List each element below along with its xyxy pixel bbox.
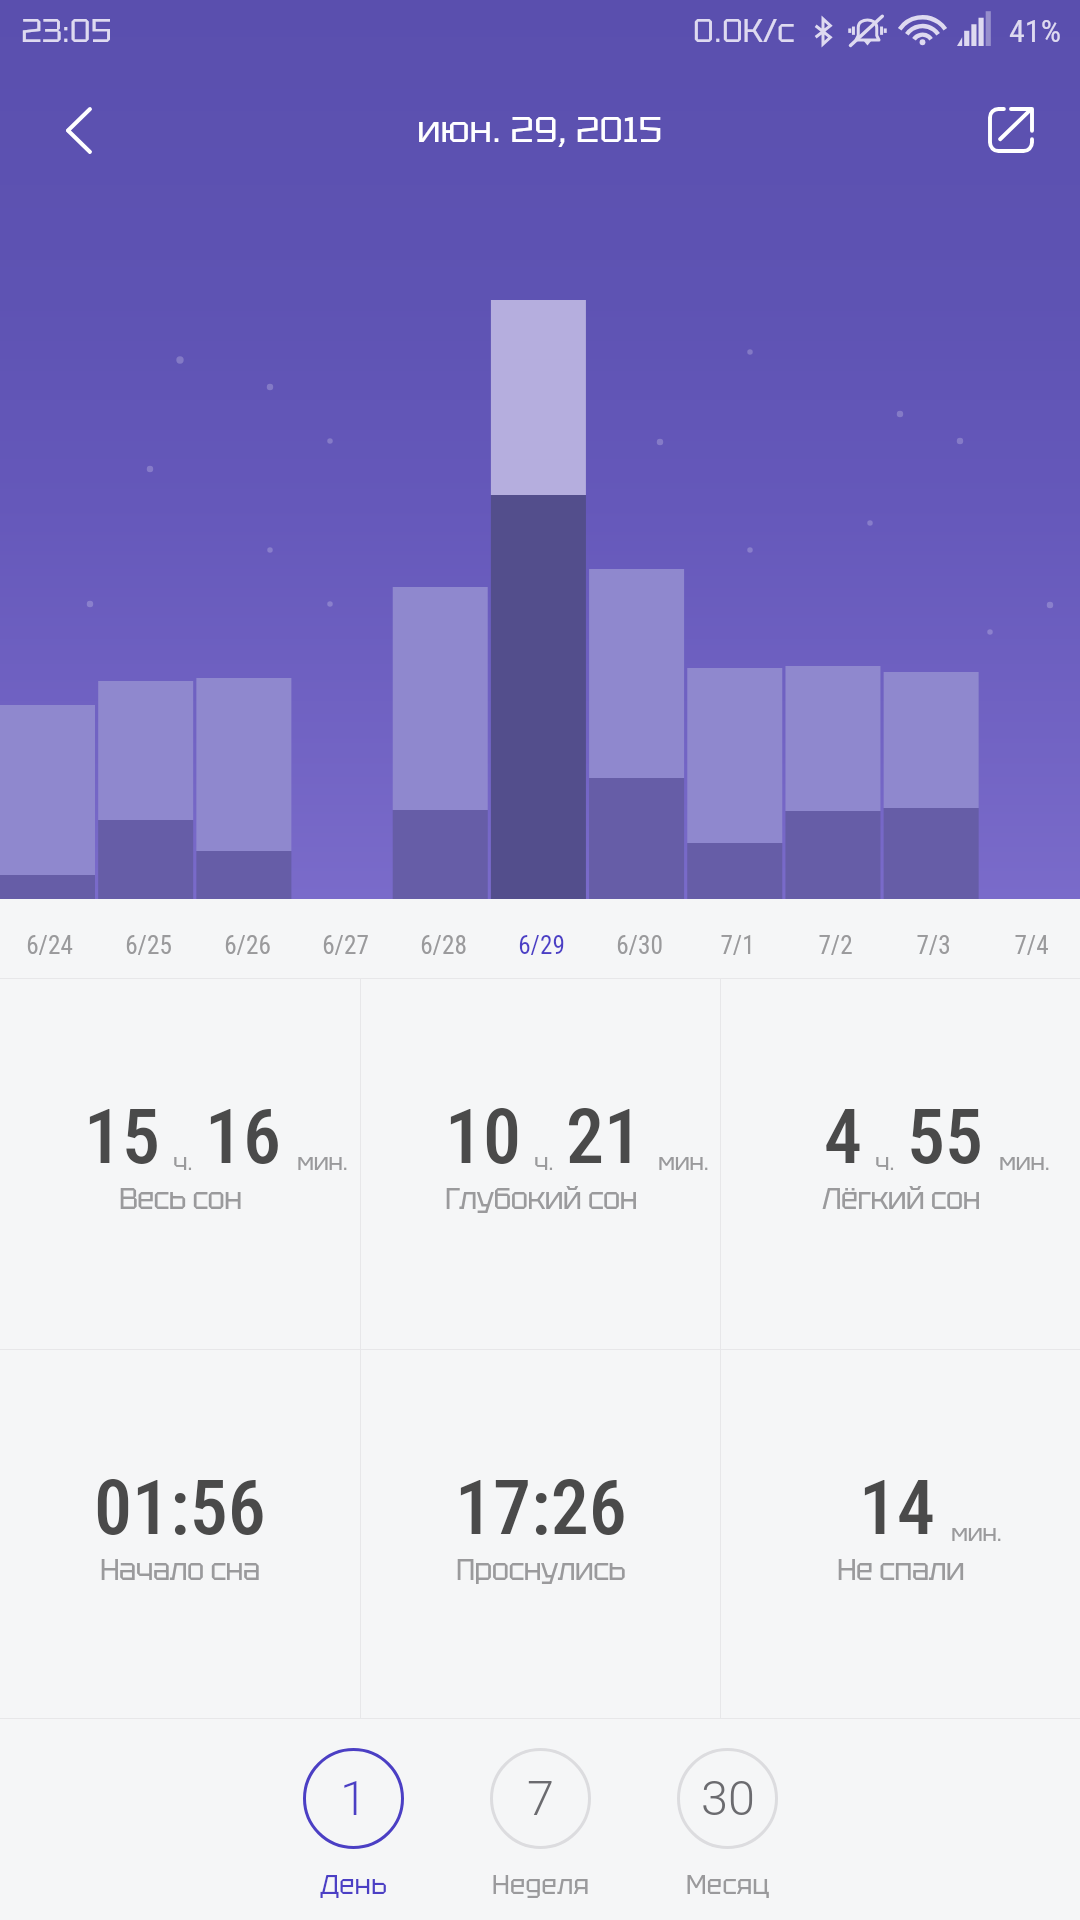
staticText: 21: [566, 1093, 643, 1182]
staticText: 1: [340, 1770, 367, 1827]
staticText: 17:26: [455, 1464, 627, 1553]
staticText: 0.0K/c: [693, 10, 795, 52]
staticText: Весь сон: [119, 1180, 242, 1218]
button[interactable]: 6/30: [590, 899, 688, 978]
staticText: 15: [84, 1093, 161, 1182]
staticText: Месяц: [686, 1868, 770, 1902]
button[interactable]: 4: [721, 979, 1080, 1349]
staticText: мин.: [999, 1146, 1050, 1177]
button[interactable]: 14: [721, 1350, 1080, 1718]
button[interactable]: 15: [0, 979, 360, 1349]
staticText: 30: [701, 1770, 755, 1827]
button[interactable]: 6/28: [394, 899, 492, 978]
button[interactable]: Share: [951, 70, 1071, 190]
staticText: 6/24: [26, 931, 73, 961]
button[interactable]: 7/1: [688, 899, 786, 978]
staticText: 7: [527, 1770, 554, 1827]
staticText: Не спали: [837, 1551, 964, 1589]
button[interactable]: 30: [634, 1719, 821, 1902]
staticText: 7/3: [916, 931, 951, 961]
button[interactable]: 6/24: [0, 899, 99, 978]
staticText: 6/29: [518, 931, 565, 961]
staticText: 6/30: [616, 931, 663, 961]
button[interactable]: 7/2: [786, 899, 884, 978]
staticText: 6/28: [420, 931, 467, 961]
staticText: ч.: [534, 1146, 554, 1177]
staticText: День: [320, 1868, 388, 1902]
staticText: Неделя: [492, 1868, 590, 1902]
staticText: 7/2: [818, 931, 853, 961]
staticText: июн. 29, 2015: [417, 106, 663, 153]
staticText: мин.: [951, 1517, 1002, 1548]
staticText: Лёгкий сон: [822, 1180, 980, 1218]
staticText: 10: [445, 1093, 522, 1182]
button[interactable]: 01:56: [0, 1350, 360, 1718]
staticText: 7/4: [1014, 931, 1049, 961]
staticText: 41%: [1009, 12, 1061, 50]
button[interactable]: 7/4: [982, 899, 1080, 978]
staticText: 01:56: [94, 1464, 266, 1553]
staticText: ч.: [875, 1146, 895, 1177]
staticText: Проснулись: [456, 1551, 626, 1589]
button[interactable]: Back: [19, 70, 139, 190]
button[interactable]: 6/26: [198, 899, 296, 978]
staticText: 6/27: [322, 931, 369, 961]
button[interactable]: 7: [447, 1719, 634, 1902]
button[interactable]: 6/27: [296, 899, 394, 978]
staticText: 7/1: [720, 931, 755, 961]
staticText: мин.: [297, 1146, 348, 1177]
staticText: 55: [907, 1093, 984, 1182]
staticText: ч.: [173, 1146, 193, 1177]
staticText: 16: [205, 1093, 282, 1182]
button[interactable]: 10: [361, 979, 720, 1349]
button[interactable]: 6/25: [99, 899, 198, 978]
staticText: мин.: [658, 1146, 709, 1177]
button[interactable]: 17:26: [361, 1350, 720, 1718]
button[interactable]: 1: [260, 1719, 447, 1902]
button[interactable]: 7/3: [884, 899, 982, 978]
staticText: Глубокий сон: [445, 1180, 637, 1218]
staticText: 6/25: [125, 931, 172, 961]
staticText: 14: [859, 1464, 936, 1553]
staticText: 6/26: [224, 931, 271, 961]
staticText: 4: [824, 1093, 863, 1182]
staticText: Начало сна: [100, 1551, 260, 1589]
staticText: 23:05: [21, 10, 112, 52]
button[interactable]: 6/29: [492, 899, 590, 978]
